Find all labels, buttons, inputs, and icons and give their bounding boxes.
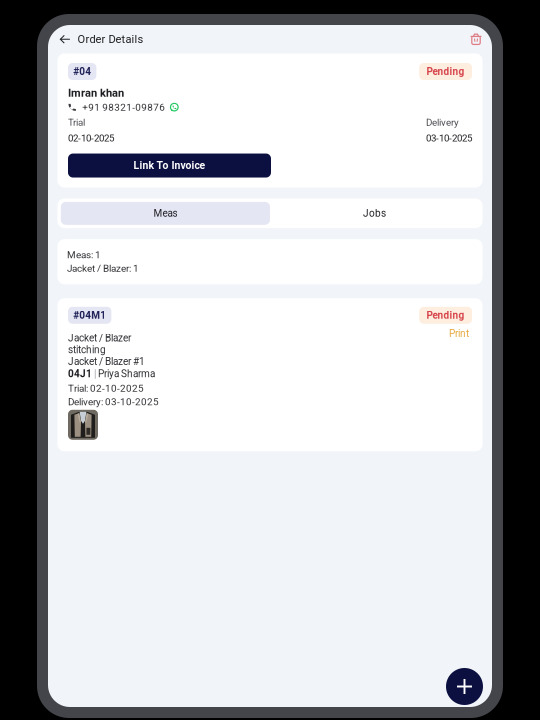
staticText: Trial: 02-10-2025	[68, 383, 144, 394]
staticText: Pending	[427, 66, 465, 77]
staticText: Jacket / Blazer	[68, 332, 131, 344]
staticText: Order Details	[77, 33, 143, 46]
button[interactable]: Link To Invoice	[68, 153, 271, 177]
staticText: Imran khan	[68, 86, 124, 99]
staticText: Meas	[153, 207, 177, 219]
button[interactable]: Back	[56, 27, 74, 51]
staticText: Print	[449, 328, 469, 339]
button[interactable]: Print	[446, 324, 472, 339]
button[interactable]: Add job	[446, 668, 483, 705]
staticText: Meas: 1	[67, 249, 101, 261]
staticText: Trial	[68, 117, 85, 128]
staticText: Delivery	[426, 117, 459, 128]
button[interactable]: Delete order	[466, 26, 486, 52]
staticText: +91 98321-09876	[82, 102, 165, 113]
staticText: Link To Invoice	[133, 159, 205, 172]
staticText: Priya Sharma	[98, 368, 155, 380]
button[interactable]: Meas	[61, 202, 270, 225]
staticText: Jobs	[363, 207, 386, 219]
staticText: stitching	[68, 344, 106, 356]
staticText: #04	[73, 66, 91, 77]
staticText: Pending	[427, 309, 465, 321]
staticText: |	[92, 368, 98, 380]
staticText: Delivery: 03-10-2025	[68, 396, 159, 408]
staticText: 03-10-2025	[426, 132, 472, 144]
staticText: #04M1	[73, 309, 106, 321]
button[interactable]: Jobs	[270, 202, 479, 225]
staticText: Jacket / Blazer: 1	[67, 263, 139, 274]
staticText: 02-10-2025	[68, 132, 114, 144]
staticText: Jacket / Blazer #1	[68, 356, 145, 367]
staticText: 04J1	[68, 368, 92, 380]
